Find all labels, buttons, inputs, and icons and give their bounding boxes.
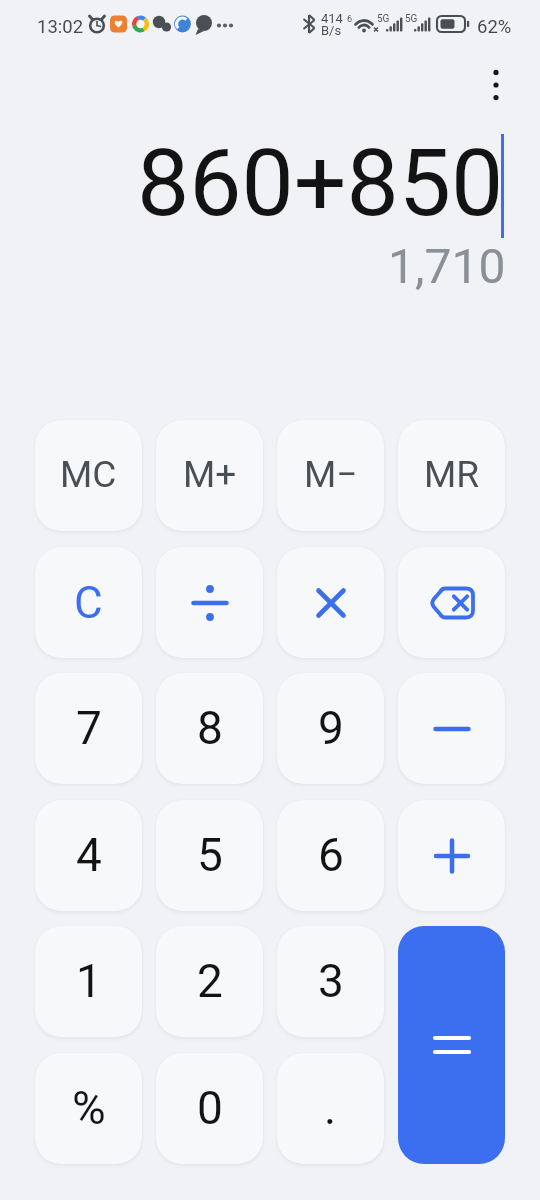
staticText: 5G [377, 13, 390, 25]
staticText: 860+850 [137, 129, 504, 238]
staticText: . [324, 1081, 337, 1135]
button[interactable]: Plus [398, 800, 505, 911]
staticText: 5G [405, 13, 418, 25]
staticText: 7 [76, 701, 102, 755]
button[interactable]: Divide [156, 547, 263, 658]
button[interactable]: . [277, 1053, 384, 1164]
button[interactable]: Multiply [277, 547, 384, 658]
button[interactable]: MR [398, 420, 505, 531]
other: Backspace [427, 578, 477, 628]
button[interactable]: Minus [398, 673, 505, 784]
staticText: MC [60, 453, 117, 496]
button[interactable]: 1 [35, 926, 142, 1037]
button[interactable]: 4 [35, 800, 142, 911]
button[interactable]: MC [35, 420, 142, 531]
button[interactable]: M+ [156, 420, 263, 531]
staticText: 1,710 [388, 238, 506, 294]
button[interactable]: 3 [277, 926, 384, 1037]
staticText: 6 [347, 14, 353, 25]
other: Multiply [311, 583, 351, 623]
staticText: 9 [318, 701, 344, 755]
button[interactable]: 2 [156, 926, 263, 1037]
button[interactable]: 7 [35, 673, 142, 784]
staticText: 2 [197, 954, 223, 1008]
staticText: MR [424, 453, 480, 496]
button[interactable]: Equals [398, 926, 505, 1164]
button[interactable]: % [35, 1053, 142, 1164]
other: Plus [432, 836, 472, 876]
staticText: M− [304, 453, 358, 496]
button[interactable]: M− [277, 420, 384, 531]
staticText: 6 [318, 828, 344, 882]
staticText: 1 [76, 954, 102, 1008]
staticText: 3 [318, 954, 344, 1008]
staticText: 5 [197, 828, 223, 882]
button[interactable]: 6 [277, 800, 384, 911]
staticText: B/s [321, 23, 342, 38]
staticText: M+ [183, 453, 237, 496]
staticText: 13:02 [37, 16, 84, 38]
staticText: 414 [321, 11, 343, 26]
staticText: 8 [197, 701, 223, 755]
button[interactable]: 0 [156, 1053, 263, 1164]
staticText: 0 [197, 1081, 223, 1135]
staticText: 62% [477, 16, 512, 38]
button[interactable]: C [35, 547, 142, 658]
other: Divide [190, 583, 230, 623]
staticText: % [72, 1081, 106, 1135]
button[interactable]: 9 [277, 673, 384, 784]
button[interactable]: 5 [156, 800, 263, 911]
button[interactable]: Backspace [398, 547, 505, 658]
other: Minus [432, 709, 472, 749]
staticText: 4 [76, 828, 102, 882]
button[interactable]: 8 [156, 673, 263, 784]
staticText: C [74, 577, 103, 629]
button[interactable]: More options [470, 59, 522, 111]
